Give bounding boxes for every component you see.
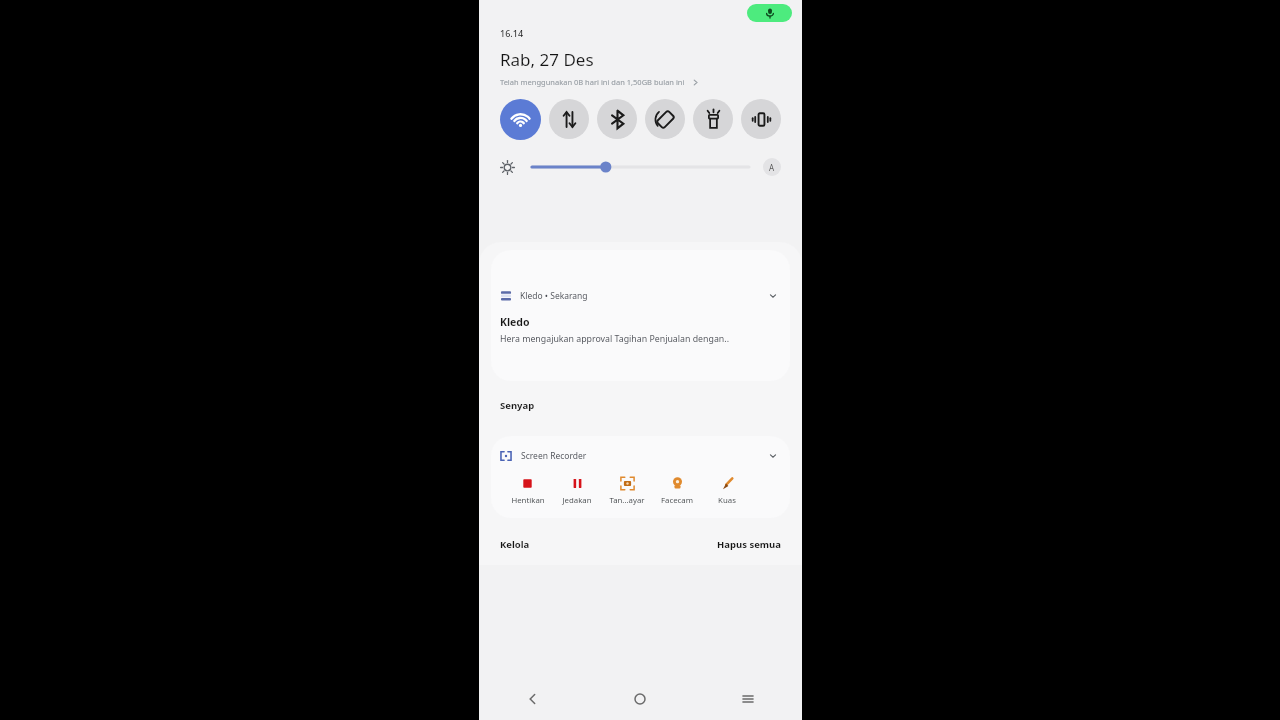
- staticText: Jedakan: [562, 495, 592, 506]
- button[interactable]: Screen Recorder: [491, 436, 790, 518]
- button[interactable]: Auto rotate: [645, 99, 685, 139]
- button[interactable]: Jedakan: [553, 476, 601, 506]
- button[interactable]: Flashlight: [693, 99, 733, 139]
- staticText: Kelola: [500, 538, 530, 551]
- button[interactable]: Recents: [694, 678, 802, 720]
- staticText: Kledo: [500, 315, 530, 329]
- button[interactable]: Mobile data: [549, 99, 589, 139]
- button[interactable]: Brightness: [500, 160, 515, 175]
- staticText: Kledo • Sekarang: [520, 290, 588, 302]
- staticText: Screen Recorder: [521, 450, 587, 462]
- button[interactable]: Kelola: [500, 538, 530, 551]
- button[interactable]: Recording indicator: [747, 4, 792, 22]
- staticText: Rab, 27 Des: [500, 48, 594, 71]
- staticText: A: [769, 162, 775, 173]
- button[interactable]: Hapus semua: [717, 538, 781, 551]
- button[interactable]: Brightness slider: [532, 156, 749, 178]
- staticText: Tan...ayar: [609, 495, 645, 506]
- button[interactable]: Kledo • Sekarang: [491, 250, 790, 381]
- staticText: 16.14: [500, 27, 524, 39]
- button[interactable]: Expand: [765, 288, 781, 304]
- button[interactable]: Kuas: [703, 476, 751, 506]
- button[interactable]: Back: [479, 678, 586, 720]
- button[interactable]: Home: [586, 678, 694, 720]
- button[interactable]: Expand: [765, 448, 781, 464]
- button[interactable]: Tan...ayar: [603, 476, 651, 506]
- staticText: Kuas: [718, 495, 736, 506]
- staticText: Facecam: [661, 495, 693, 506]
- button[interactable]: Hentikan: [504, 476, 551, 506]
- button[interactable]: Bluetooth: [597, 99, 637, 139]
- button[interactable]: Wi-Fi: [500, 99, 541, 140]
- button[interactable]: Telah menggunakan 0B hari ini dan 1,50GB…: [500, 77, 700, 87]
- staticText: Telah menggunakan 0B hari ini dan 1,50GB…: [500, 77, 685, 87]
- staticText: Hera mengajukan approval Tagihan Penjual…: [500, 333, 730, 345]
- button[interactable]: Facecam: [653, 476, 701, 506]
- button[interactable]: Auto brightness: [763, 158, 781, 176]
- staticText: Senyap: [500, 399, 535, 412]
- staticText: Hentikan: [511, 495, 545, 506]
- button[interactable]: Vibrate: [741, 99, 781, 139]
- staticText: Hapus semua: [717, 538, 781, 551]
